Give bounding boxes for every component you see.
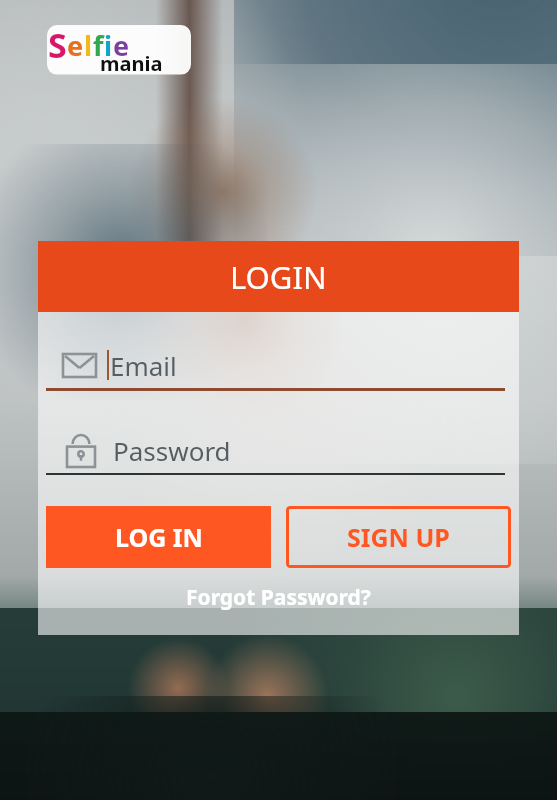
button[interactable]: Forgot Password? — [38, 580, 519, 614]
other: Email — [63, 353, 96, 378]
staticText: mania — [100, 50, 163, 77]
staticText: Email — [110, 348, 177, 383]
staticText: f — [93, 27, 104, 64]
staticText: i — [104, 27, 113, 64]
staticText: LOG IN — [115, 520, 203, 554]
button[interactable]: LOG IN — [46, 506, 271, 568]
staticText: e — [113, 27, 130, 64]
staticText: LOGIN — [230, 256, 327, 298]
other: Password — [67, 433, 95, 467]
staticText: e — [67, 27, 84, 64]
staticText: Password — [113, 433, 231, 468]
button[interactable]: Email — [46, 342, 505, 388]
staticText: l — [84, 27, 93, 64]
staticText: Forgot Password? — [186, 583, 371, 612]
button[interactable]: SIGN UP — [286, 506, 511, 568]
staticText: SIGN UP — [347, 520, 450, 554]
staticText: S — [48, 22, 67, 68]
button[interactable]: Password — [46, 427, 505, 473]
